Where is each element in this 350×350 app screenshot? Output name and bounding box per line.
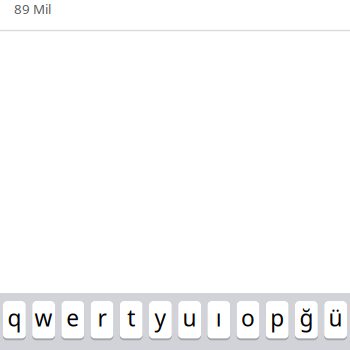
button[interactable]: p	[266, 301, 289, 340]
staticText: p	[270, 303, 284, 333]
button[interactable]: w	[32, 301, 55, 340]
button[interactable]: q	[3, 301, 26, 340]
staticText: 89 Mil	[14, 0, 51, 18]
staticText: ü	[329, 303, 343, 333]
staticText: o	[241, 303, 255, 333]
staticText: u	[183, 303, 197, 333]
staticText: r	[97, 303, 106, 333]
button[interactable]: r	[91, 301, 113, 340]
staticText: ğ	[299, 303, 313, 333]
staticText: y	[154, 303, 166, 333]
button[interactable]: y	[149, 301, 172, 340]
staticText: t	[127, 303, 135, 333]
staticText: ı	[216, 303, 222, 333]
button[interactable]: ü	[324, 301, 347, 340]
button[interactable]: 89 Mil	[0, 0, 350, 17]
button[interactable]: ı	[207, 301, 230, 340]
button[interactable]: u	[178, 301, 201, 340]
staticText: e	[66, 303, 79, 333]
staticText: w	[35, 303, 53, 333]
button[interactable]: o	[237, 301, 259, 340]
button[interactable]: ğ	[295, 301, 318, 340]
button[interactable]: t	[120, 301, 143, 340]
staticText: q	[7, 303, 21, 333]
button[interactable]: e	[61, 301, 84, 340]
